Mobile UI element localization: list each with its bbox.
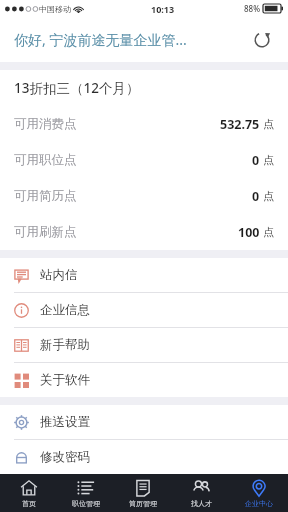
staticText: 找人才 <box>191 499 212 508</box>
staticText: 你好, 宁波前途无量企业管... <box>14 30 242 49</box>
staticText: 企业信息 <box>40 302 90 318</box>
staticText: 点 <box>263 225 274 239</box>
staticText: 532.75 <box>220 116 260 133</box>
staticText: 修改密码 <box>40 449 90 465</box>
staticText: 100 <box>238 224 260 241</box>
staticText: 点 <box>263 117 274 131</box>
staticText: 关于软件 <box>40 372 90 388</box>
staticText: 首页 <box>22 499 36 508</box>
staticText: 站内信 <box>40 267 78 283</box>
button[interactable]: Refresh <box>242 20 282 60</box>
staticText: 可用刷新点 <box>14 224 77 240</box>
staticText: 点 <box>263 153 274 167</box>
button[interactable]: 可用消费点 <box>0 106 288 142</box>
staticText: 企业中心 <box>245 499 273 508</box>
button[interactable]: 新手帮助 <box>0 328 288 362</box>
staticText: 推送设置 <box>40 414 90 430</box>
button[interactable]: 修改密码 <box>0 440 288 474</box>
staticText: 0 <box>252 152 260 169</box>
button[interactable]: 首页 <box>0 474 57 512</box>
button[interactable]: 可用刷新点 <box>0 214 288 250</box>
staticText: 中国移动 <box>39 4 71 14</box>
button[interactable]: 企业中心 <box>230 474 288 512</box>
staticText: 可用简历点 <box>14 188 77 204</box>
staticText: 点 <box>263 189 274 203</box>
button[interactable]: 可用简历点 <box>0 178 288 214</box>
staticText: 简历管理 <box>129 499 157 508</box>
button[interactable]: 关于软件 <box>0 363 288 397</box>
staticText: 可用职位点 <box>14 152 77 168</box>
staticText: 可用消费点 <box>14 116 77 132</box>
staticText: 0 <box>252 188 260 205</box>
button[interactable]: 可用职位点 <box>0 142 288 178</box>
staticText: 88% <box>244 3 260 14</box>
staticText: 10:13 <box>151 3 175 15</box>
button[interactable]: 找人才 <box>172 474 230 512</box>
staticText: 职位管理 <box>72 499 100 508</box>
button[interactable]: 简历管理 <box>114 474 172 512</box>
button[interactable]: 企业信息 <box>0 293 288 327</box>
button[interactable]: 职位管理 <box>57 474 114 512</box>
staticText: 新手帮助 <box>40 337 90 353</box>
staticText: 13折扣三（12个月） <box>14 79 140 97</box>
button[interactable]: 站内信 <box>0 258 288 292</box>
button[interactable]: 推送设置 <box>0 405 288 439</box>
